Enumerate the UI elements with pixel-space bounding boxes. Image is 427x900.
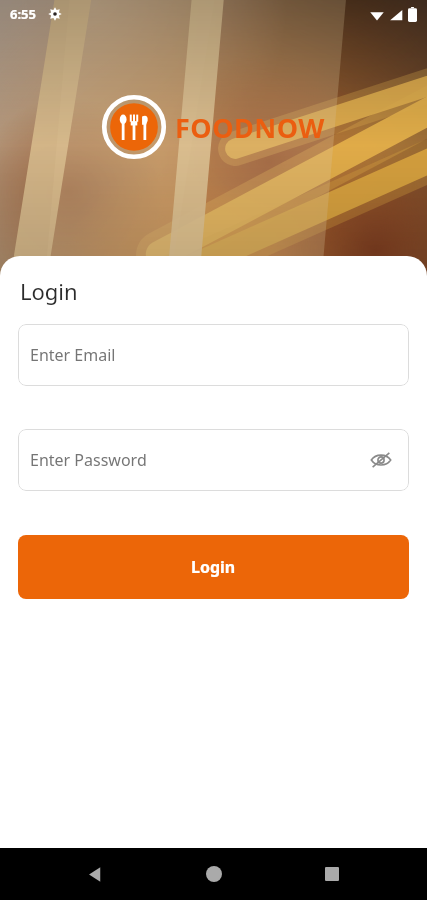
staticText: Enter Email bbox=[30, 344, 116, 366]
staticText: Enter Password bbox=[30, 449, 147, 471]
button[interactable]: Recent apps bbox=[308, 850, 356, 898]
button[interactable]: Enter Password bbox=[18, 429, 409, 491]
button[interactable]: Show password bbox=[365, 444, 397, 476]
staticText: Login bbox=[191, 556, 236, 578]
button[interactable]: Enter Email bbox=[18, 324, 409, 386]
button[interactable]: Home bbox=[190, 850, 238, 898]
button[interactable]: Back bbox=[71, 850, 119, 898]
staticText: 6:55 bbox=[10, 5, 36, 23]
button[interactable]: Login bbox=[18, 535, 409, 599]
staticText: FOODNOW bbox=[175, 109, 325, 146]
staticText: Login bbox=[20, 276, 78, 306]
